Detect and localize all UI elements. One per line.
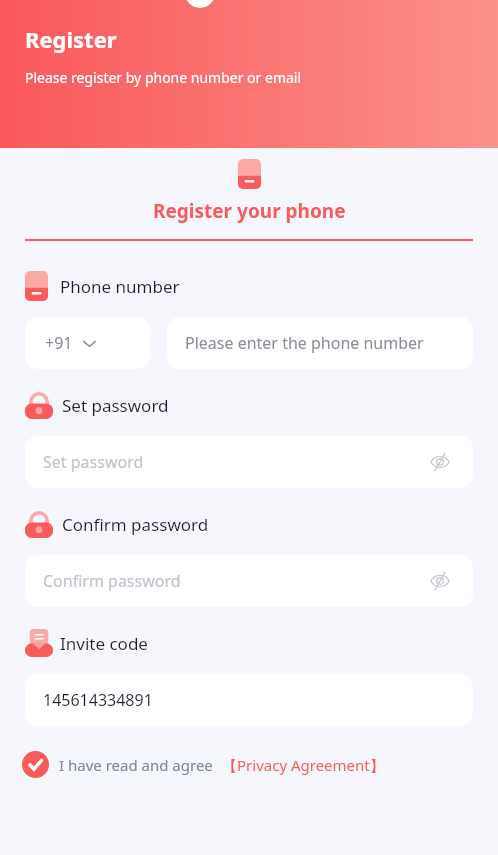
button[interactable]: I have read and agree <box>22 751 498 778</box>
staticText: +91 <box>45 332 73 354</box>
button[interactable]: +91 <box>25 317 150 369</box>
staticText: 145614334891 <box>43 689 153 711</box>
button[interactable]: 【Privacy Agreement】 <box>222 755 385 775</box>
button[interactable]: Show password <box>425 566 455 596</box>
staticText: Set password <box>62 394 169 417</box>
button[interactable]: Register your phone <box>0 198 498 224</box>
staticText: I have read and agree <box>59 755 213 775</box>
button[interactable]: Please enter the phone number <box>167 317 473 369</box>
staticText: Register <box>25 24 117 54</box>
staticText: Confirm password <box>43 570 181 592</box>
button[interactable]: Confirm password <box>25 555 473 607</box>
staticText: Confirm password <box>62 513 209 536</box>
staticText: Invite code <box>60 632 148 655</box>
staticText: Phone number <box>60 275 180 298</box>
button[interactable]: 145614334891 <box>25 674 473 726</box>
staticText: Register your phone <box>153 198 346 224</box>
button[interactable]: Set password <box>25 436 473 488</box>
staticText: Please register by phone number or email <box>25 68 302 87</box>
staticText: Please enter the phone number <box>185 332 424 354</box>
button[interactable]: Show password <box>425 447 455 477</box>
staticText: Set password <box>43 451 144 473</box>
